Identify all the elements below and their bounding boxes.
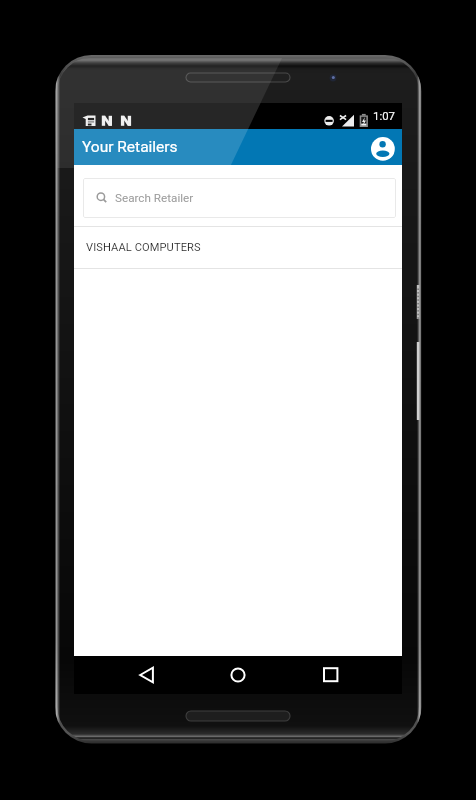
staticText: VISHAAL COMPUTERS [86, 241, 201, 254]
button[interactable]: Recent apps [308, 656, 353, 694]
button[interactable]: Back [124, 656, 169, 694]
button[interactable]: Account [371, 137, 395, 161]
button[interactable]: VISHAAL COMPUTERS [74, 227, 402, 268]
staticText: Search Retailer [115, 191, 194, 205]
button[interactable]: Search Retailer [83, 178, 396, 218]
button[interactable]: Home [215, 656, 261, 694]
staticText: Your Retailers [82, 138, 178, 156]
staticText: 1:07 [373, 109, 395, 122]
